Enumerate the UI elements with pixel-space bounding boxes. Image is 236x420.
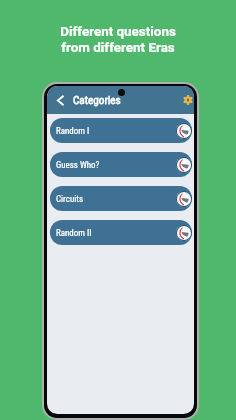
staticText: Random II <box>56 228 92 238</box>
staticText: Circuits <box>56 194 83 204</box>
button[interactable]: Settings <box>181 94 194 107</box>
button[interactable]: Back <box>53 93 68 108</box>
staticText: Categories <box>73 94 121 107</box>
button[interactable]: Random II <box>50 220 192 245</box>
button[interactable]: Guess Who? <box>50 152 192 177</box>
staticText: Random I <box>56 126 90 136</box>
button[interactable]: Random I <box>50 118 192 143</box>
staticText: Guess Who? <box>56 160 100 170</box>
staticText: Different questions <box>60 24 176 40</box>
staticText: from different Eras <box>61 40 175 56</box>
button[interactable]: Circuits <box>50 186 192 211</box>
